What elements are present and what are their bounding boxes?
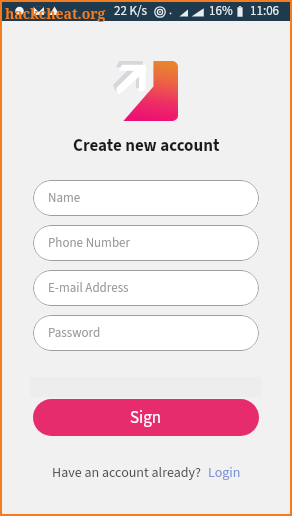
- button[interactable]: Password: [33, 315, 259, 351]
- staticText: Sign: [130, 406, 162, 430]
- staticText: Name: [48, 189, 81, 208]
- staticText: hackcheat.org: [5, 4, 106, 23]
- staticText: Login: [208, 463, 241, 483]
- staticText: Password: [48, 324, 101, 343]
- staticText: Have an account already?: [52, 463, 201, 483]
- button[interactable]: E-mail Address: [33, 270, 259, 306]
- button[interactable]: Name: [33, 180, 259, 216]
- staticText: 16%: [209, 2, 233, 21]
- staticText: 11:06: [250, 2, 280, 21]
- staticText: Create new account: [73, 134, 220, 158]
- staticText: Phone Number: [48, 234, 131, 253]
- button[interactable]: Phone Number: [33, 225, 259, 261]
- staticText: E-mail Address: [48, 279, 129, 298]
- button[interactable]: Login: [208, 463, 241, 483]
- button[interactable]: Sign: [33, 399, 259, 436]
- staticText: 22 K/s: [114, 2, 148, 21]
